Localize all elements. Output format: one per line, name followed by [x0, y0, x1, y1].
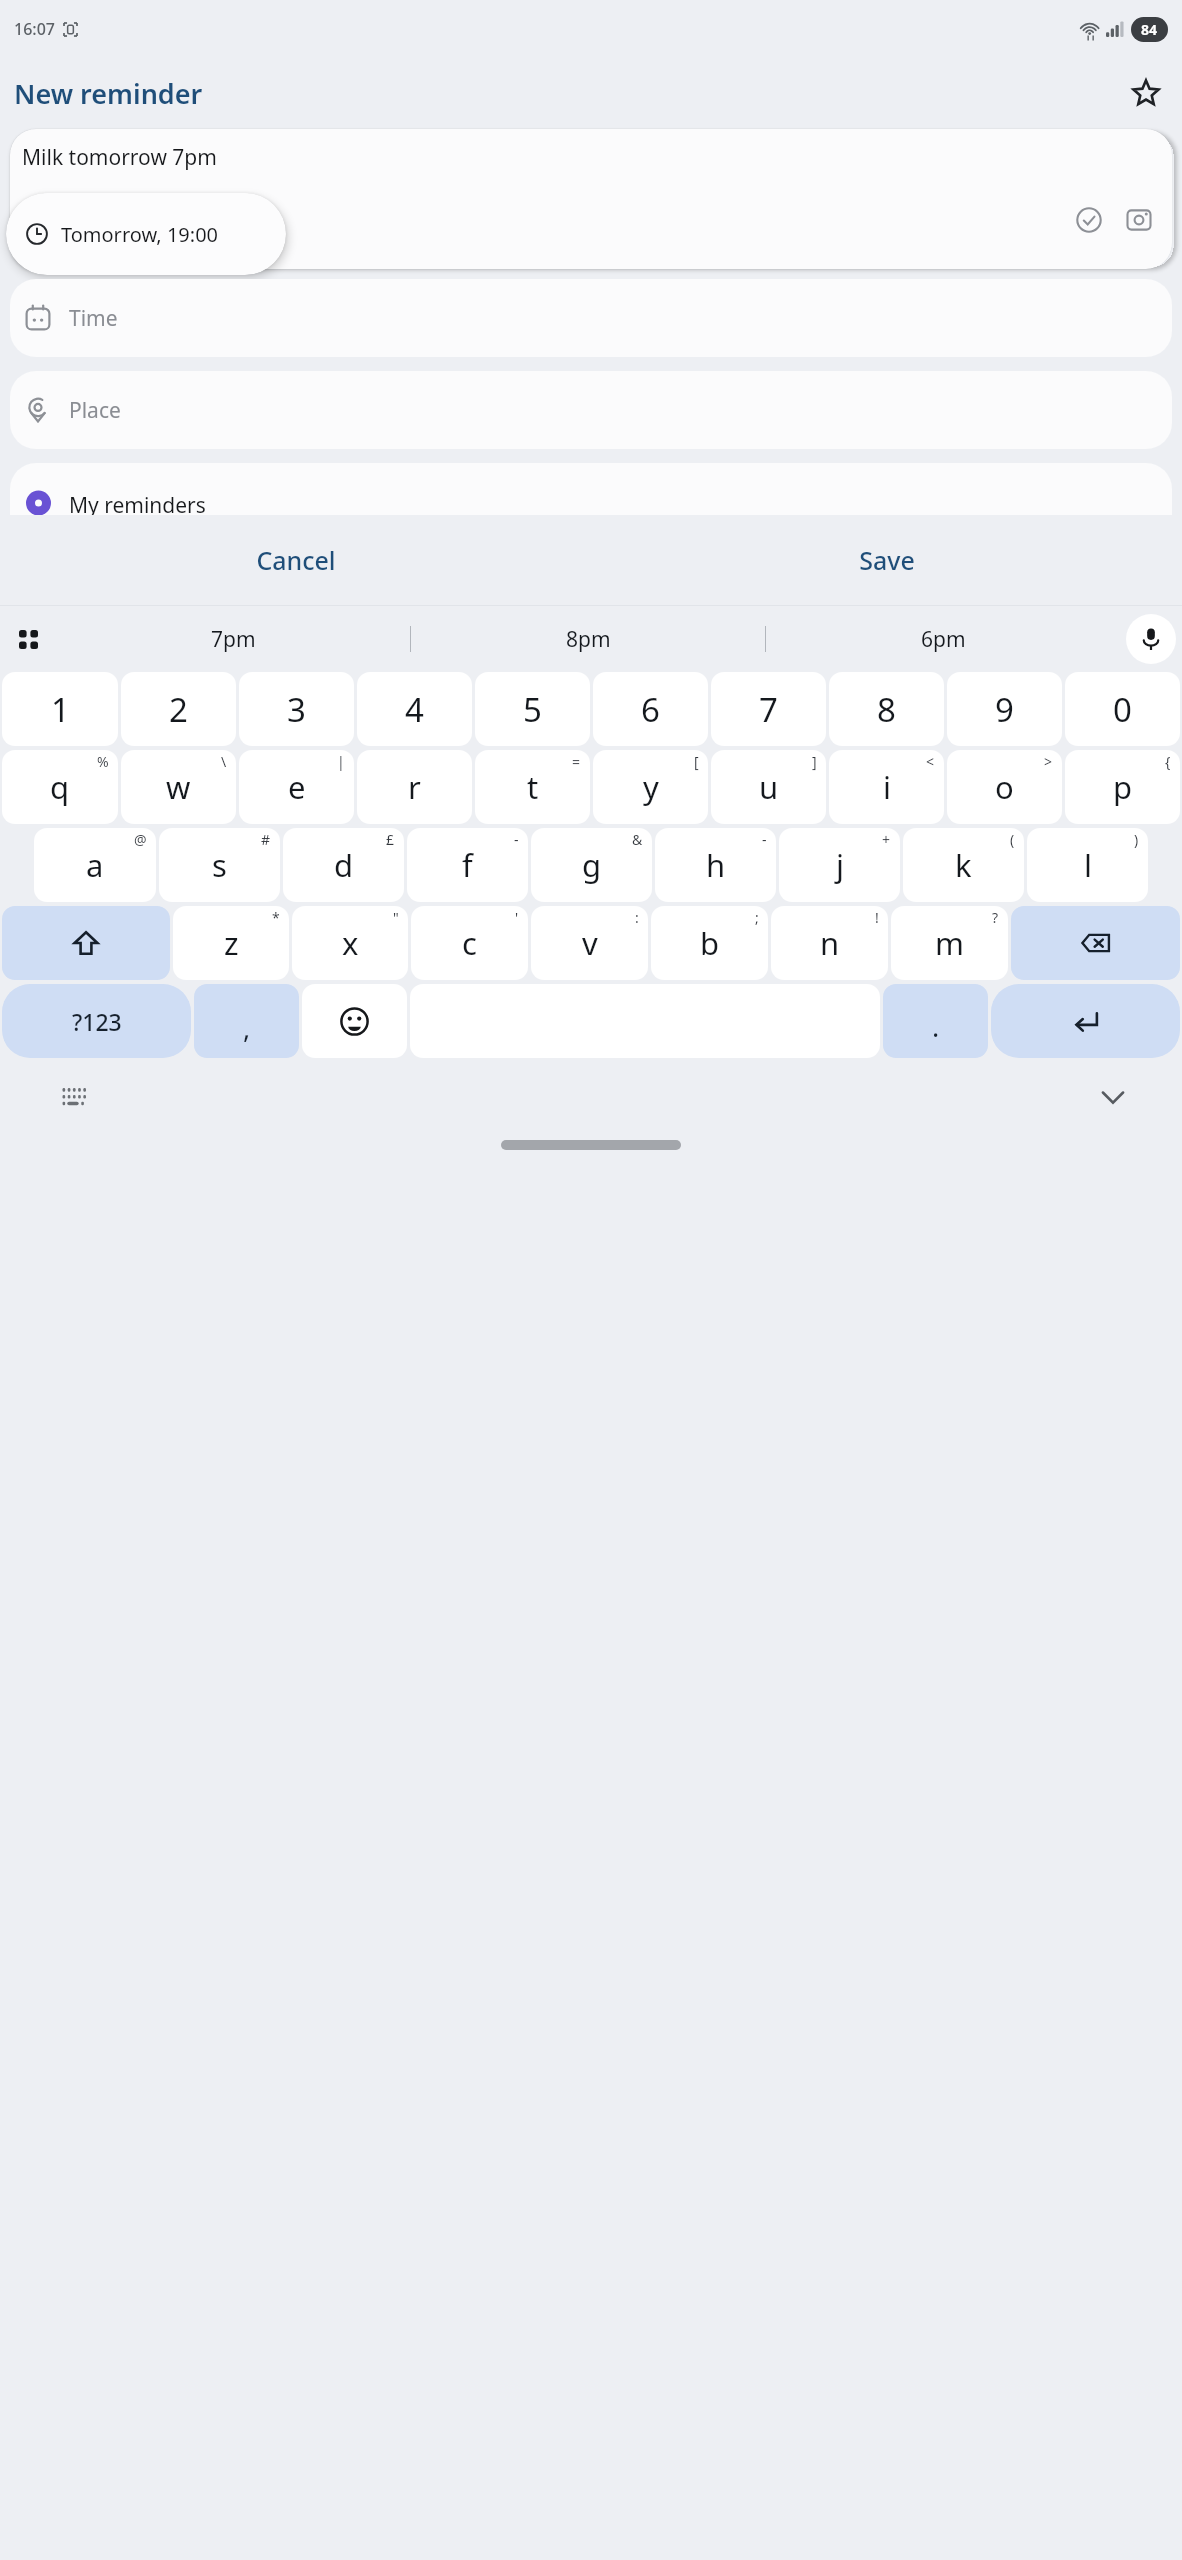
button[interactable]: t [475, 750, 590, 824]
button[interactable]: Enter [991, 984, 1180, 1058]
staticText: Milk tomorrow 7pm [22, 143, 217, 172]
button[interactable]: 9 [947, 672, 1062, 746]
staticText: ) [1134, 830, 1139, 849]
staticText: ; [755, 908, 759, 927]
staticText: 1 [51, 687, 70, 732]
button[interactable]: i [829, 750, 944, 824]
button[interactable]: Period [883, 984, 988, 1058]
staticText: t [527, 766, 539, 808]
staticText: o [995, 766, 1014, 808]
button[interactable]: 7 [711, 672, 826, 746]
staticText: \ [221, 752, 227, 771]
button[interactable]: b [651, 906, 768, 980]
staticText: ?123 [72, 1006, 122, 1037]
button[interactable]: My reminders [10, 463, 1172, 515]
button[interactable]: Place [10, 371, 1172, 449]
button[interactable]: v [531, 906, 648, 980]
button[interactable]: 7pm [56, 606, 410, 672]
button[interactable]: a [34, 828, 156, 902]
staticText: 6pm [921, 625, 966, 654]
staticText: j [836, 844, 844, 886]
staticText: , [243, 1009, 251, 1046]
staticText: ( [1010, 830, 1015, 849]
button[interactable]: 8 [829, 672, 944, 746]
button[interactable]: 0 [1065, 672, 1180, 746]
button[interactable]: q [2, 750, 118, 824]
button[interactable]: 5 [475, 672, 590, 746]
staticText: = [572, 752, 581, 771]
button[interactable]: h [655, 828, 776, 902]
button[interactable]: Emoji [302, 984, 407, 1058]
button[interactable]: 6pm [766, 606, 1120, 672]
staticText: 3 [287, 687, 306, 732]
button[interactable]: y [593, 750, 708, 824]
button[interactable]: s [159, 828, 280, 902]
button[interactable]: p [1065, 750, 1180, 824]
staticText: - [762, 830, 767, 849]
button[interactable]: c [411, 906, 528, 980]
staticText: 16:07 [14, 18, 55, 40]
button[interactable]: n [771, 906, 888, 980]
staticText: m [935, 922, 964, 964]
staticText: # [261, 830, 271, 849]
button[interactable]: 6 [593, 672, 708, 746]
staticText: h [706, 844, 726, 886]
button[interactable]: ?123 [2, 984, 191, 1058]
button[interactable]: Save [591, 515, 1182, 605]
button[interactable]: Milk tomorrow 7pm [10, 129, 1172, 269]
staticText: y [643, 766, 659, 808]
button[interactable]: Switch keyboard [52, 1076, 96, 1120]
button[interactable]: Keyboard toolbar [0, 606, 56, 672]
button[interactable]: Backspace [1011, 906, 1180, 980]
staticText: g [582, 844, 602, 886]
staticText: ] [812, 752, 817, 771]
staticText: q [50, 766, 70, 808]
button[interactable]: Complete [1066, 197, 1112, 243]
button[interactable]: r [357, 750, 472, 824]
staticText: - [514, 830, 519, 849]
staticText: { [1165, 752, 1171, 771]
staticText: Time [69, 304, 118, 333]
button[interactable]: m [891, 906, 1008, 980]
button[interactable]: 2 [121, 672, 236, 746]
button[interactable]: e [239, 750, 354, 824]
button[interactable]: Favourite [1122, 69, 1170, 117]
button[interactable]: Tomorrow, 19:00 [6, 193, 286, 275]
button[interactable]: Time [10, 279, 1172, 357]
button[interactable]: g [531, 828, 652, 902]
button[interactable]: Comma [194, 984, 299, 1058]
button[interactable]: Hide keyboard [1086, 1070, 1140, 1124]
button[interactable]: Add photo [1116, 197, 1162, 243]
button[interactable]: z [173, 906, 289, 980]
button[interactable]: w [121, 750, 236, 824]
staticText: x [342, 922, 359, 964]
button[interactable]: d [283, 828, 404, 902]
button[interactable]: 3 [239, 672, 354, 746]
button[interactable]: k [903, 828, 1024, 902]
button[interactable]: x [292, 906, 408, 980]
staticText: n [820, 922, 840, 964]
staticText: + [882, 830, 891, 849]
staticText: : [635, 908, 639, 927]
button[interactable]: u [711, 750, 826, 824]
button[interactable]: 8pm [411, 606, 765, 672]
staticText: 7 [759, 687, 778, 732]
button[interactable]: 1 [2, 672, 118, 746]
button[interactable]: o [947, 750, 1062, 824]
button[interactable]: Cancel [0, 515, 591, 605]
button[interactable]: f [407, 828, 528, 902]
button[interactable]: j [779, 828, 900, 902]
button[interactable]: 4 [357, 672, 472, 746]
staticText: My reminders [69, 491, 206, 515]
staticText: " [393, 908, 399, 927]
staticText: e [288, 766, 306, 808]
button[interactable]: l [1027, 828, 1148, 902]
staticText: 6 [641, 687, 660, 732]
staticText: @ [134, 830, 147, 849]
staticText: u [759, 766, 779, 808]
staticText: p [1113, 766, 1133, 808]
staticText: Tomorrow, 19:00 [61, 221, 219, 248]
button[interactable]: Shift [2, 906, 170, 980]
button[interactable]: Voice input [1126, 614, 1176, 664]
